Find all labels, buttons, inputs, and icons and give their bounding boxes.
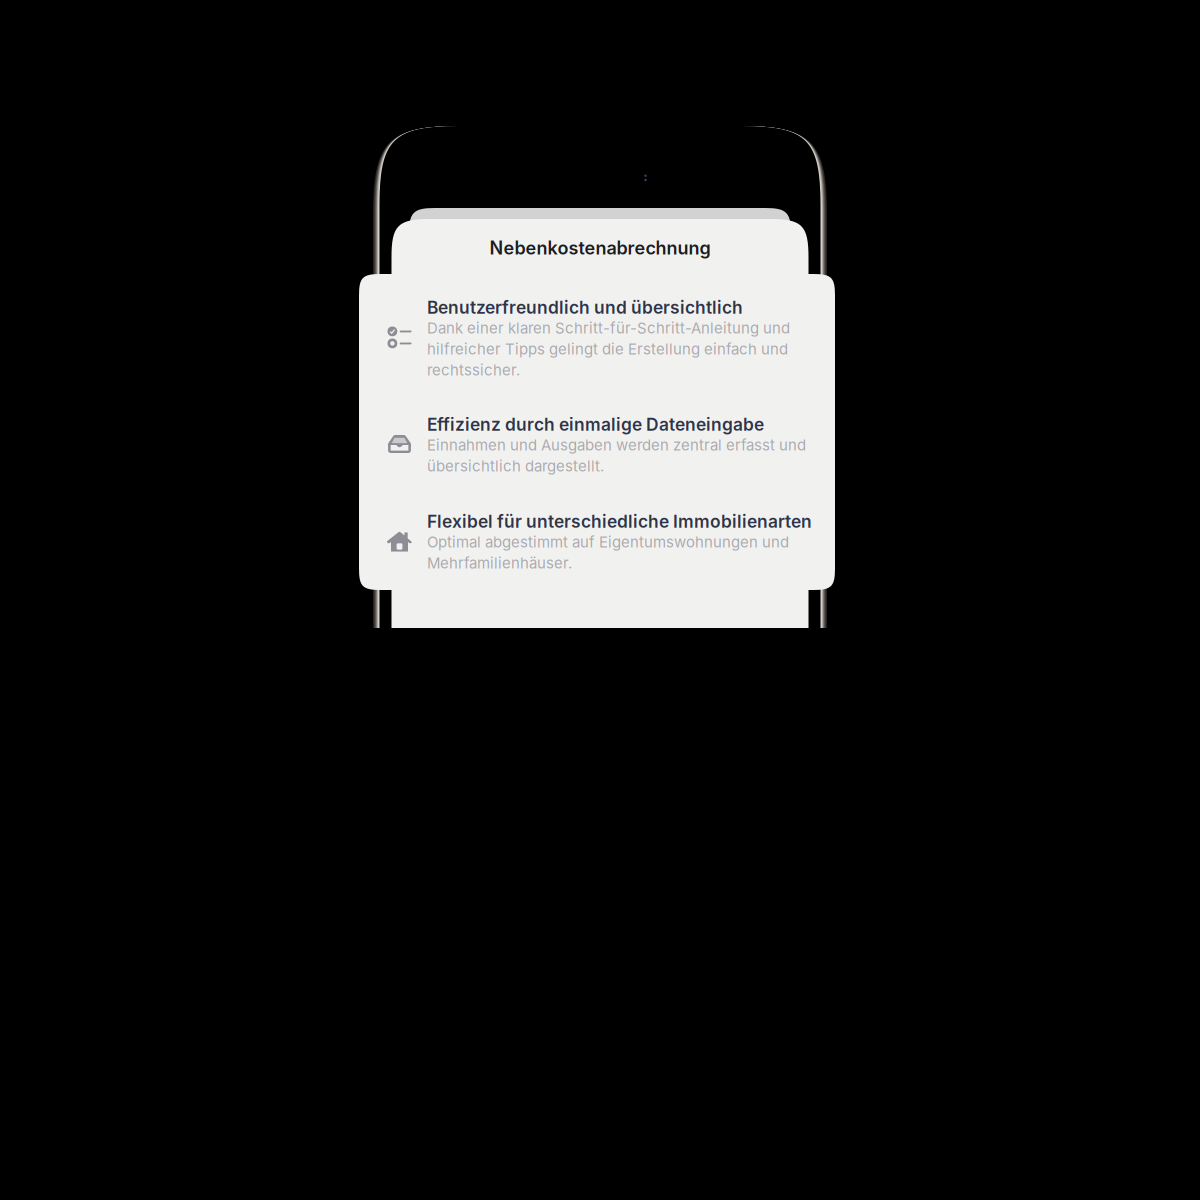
staticText: Effizienz durch einmalige Dateneingabe [427, 414, 764, 435]
button[interactable]: Nebenkostenabrechnung [391, 230, 808, 266]
staticText: Benutzerfreundlich und übersichtlich [427, 297, 743, 318]
staticText: Flexibel für unterschiedliche Immobilien… [427, 511, 812, 532]
button[interactable]: Effizienz durch einmalige Dateneingabe [387, 414, 819, 471]
staticText: Dank einer klaren Schritt-für-Schritt-An… [427, 319, 790, 379]
button[interactable]: Benutzerfreundlich und übersichtlich [387, 297, 819, 375]
staticText: Nebenkostenabrechnung [489, 237, 710, 259]
staticText: Einnahmen und Ausgaben werden zentral er… [427, 436, 806, 475]
staticText: Optimal abgestimmt auf Eigentumswohnunge… [427, 533, 789, 572]
button[interactable]: Flexibel für unterschiedliche Immobilien… [387, 511, 819, 568]
